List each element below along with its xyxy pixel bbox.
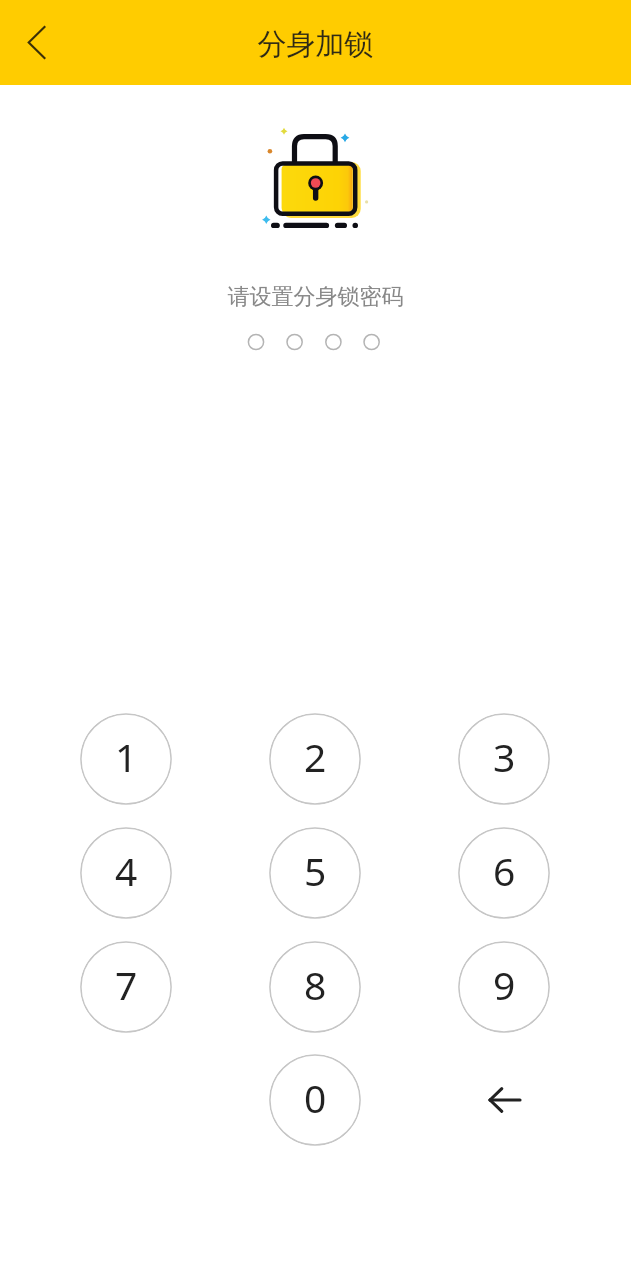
button[interactable]: 5 — [269, 827, 361, 919]
staticText: 请设置分身锁密码 — [0, 283, 631, 311]
staticText: 1 — [115, 730, 138, 783]
button[interactable]: 7 — [80, 941, 172, 1033]
staticText: 8 — [304, 958, 327, 1011]
button[interactable]: 3 — [458, 713, 550, 805]
button[interactable]: 9 — [458, 941, 550, 1033]
staticText: 6 — [493, 844, 516, 897]
button[interactable]: Delete — [458, 1054, 550, 1146]
button[interactable]: 2 — [269, 713, 361, 805]
button[interactable]: 0 — [269, 1054, 361, 1146]
button[interactable]: 6 — [458, 827, 550, 919]
staticText: 5 — [304, 844, 327, 897]
staticText: 0 — [304, 1071, 327, 1124]
button[interactable]: 1 — [80, 713, 172, 805]
staticText: 9 — [493, 958, 516, 1011]
button[interactable]: Back — [0, 14, 58, 72]
staticText: 分身加锁 — [0, 26, 631, 63]
button[interactable]: 8 — [269, 941, 361, 1033]
staticText: 3 — [493, 730, 516, 783]
staticText: 2 — [304, 730, 327, 783]
button[interactable]: 4 — [80, 827, 172, 919]
staticText: 7 — [115, 958, 138, 1011]
staticText: 4 — [115, 844, 138, 897]
